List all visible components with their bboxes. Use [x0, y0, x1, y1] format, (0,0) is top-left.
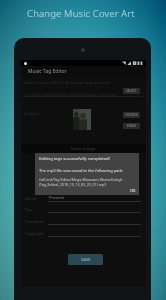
- staticText: SAVE: [81, 257, 91, 263]
- button[interactable]: Erase Image: [21, 144, 146, 153]
- staticText: OK: [130, 188, 136, 193]
- staticText: Music Tag Editor: [28, 68, 67, 75]
- button[interactable]: CHOOSE: [123, 112, 140, 118]
- staticText: Copyright: [25, 231, 44, 236]
- staticText: SELECT: [126, 89, 137, 93]
- staticText: ERASE: [127, 124, 137, 128]
- staticText: CHOOSE: [125, 113, 138, 117]
- button[interactable]: OK: [130, 188, 136, 193]
- button[interactable]: Music Tag Editor: [21, 66, 146, 77]
- staticText: /storage/emulated/0/Music/Mega-Muazzam-K…: [23, 92, 119, 97]
- staticText: Select a music file to edit its tags and…: [23, 80, 110, 85]
- button[interactable]: SELECT: [123, 88, 140, 94]
- staticText: Editing tags successfully completed!: [39, 156, 110, 162]
- staticText: Artwork: [24, 111, 40, 116]
- button[interactable]: Album artwork: [73, 109, 91, 130]
- staticText: Change Music Cover Art: [27, 7, 135, 20]
- button[interactable]: ERASE: [123, 123, 140, 129]
- staticText: Comment: [25, 219, 44, 224]
- staticText: Genre: [25, 196, 37, 201]
- staticText: Year: [25, 207, 34, 212]
- staticText: Erase Image: [71, 146, 96, 152]
- staticText: The mp3 file was saved in the following …: [39, 168, 124, 173]
- staticText: Present: [49, 195, 65, 201]
- button[interactable]: SAVE: [68, 254, 103, 265]
- staticText: /sdCard/Tag Editor/Mega-Muazzam-KhalavGo…: [39, 177, 135, 187]
